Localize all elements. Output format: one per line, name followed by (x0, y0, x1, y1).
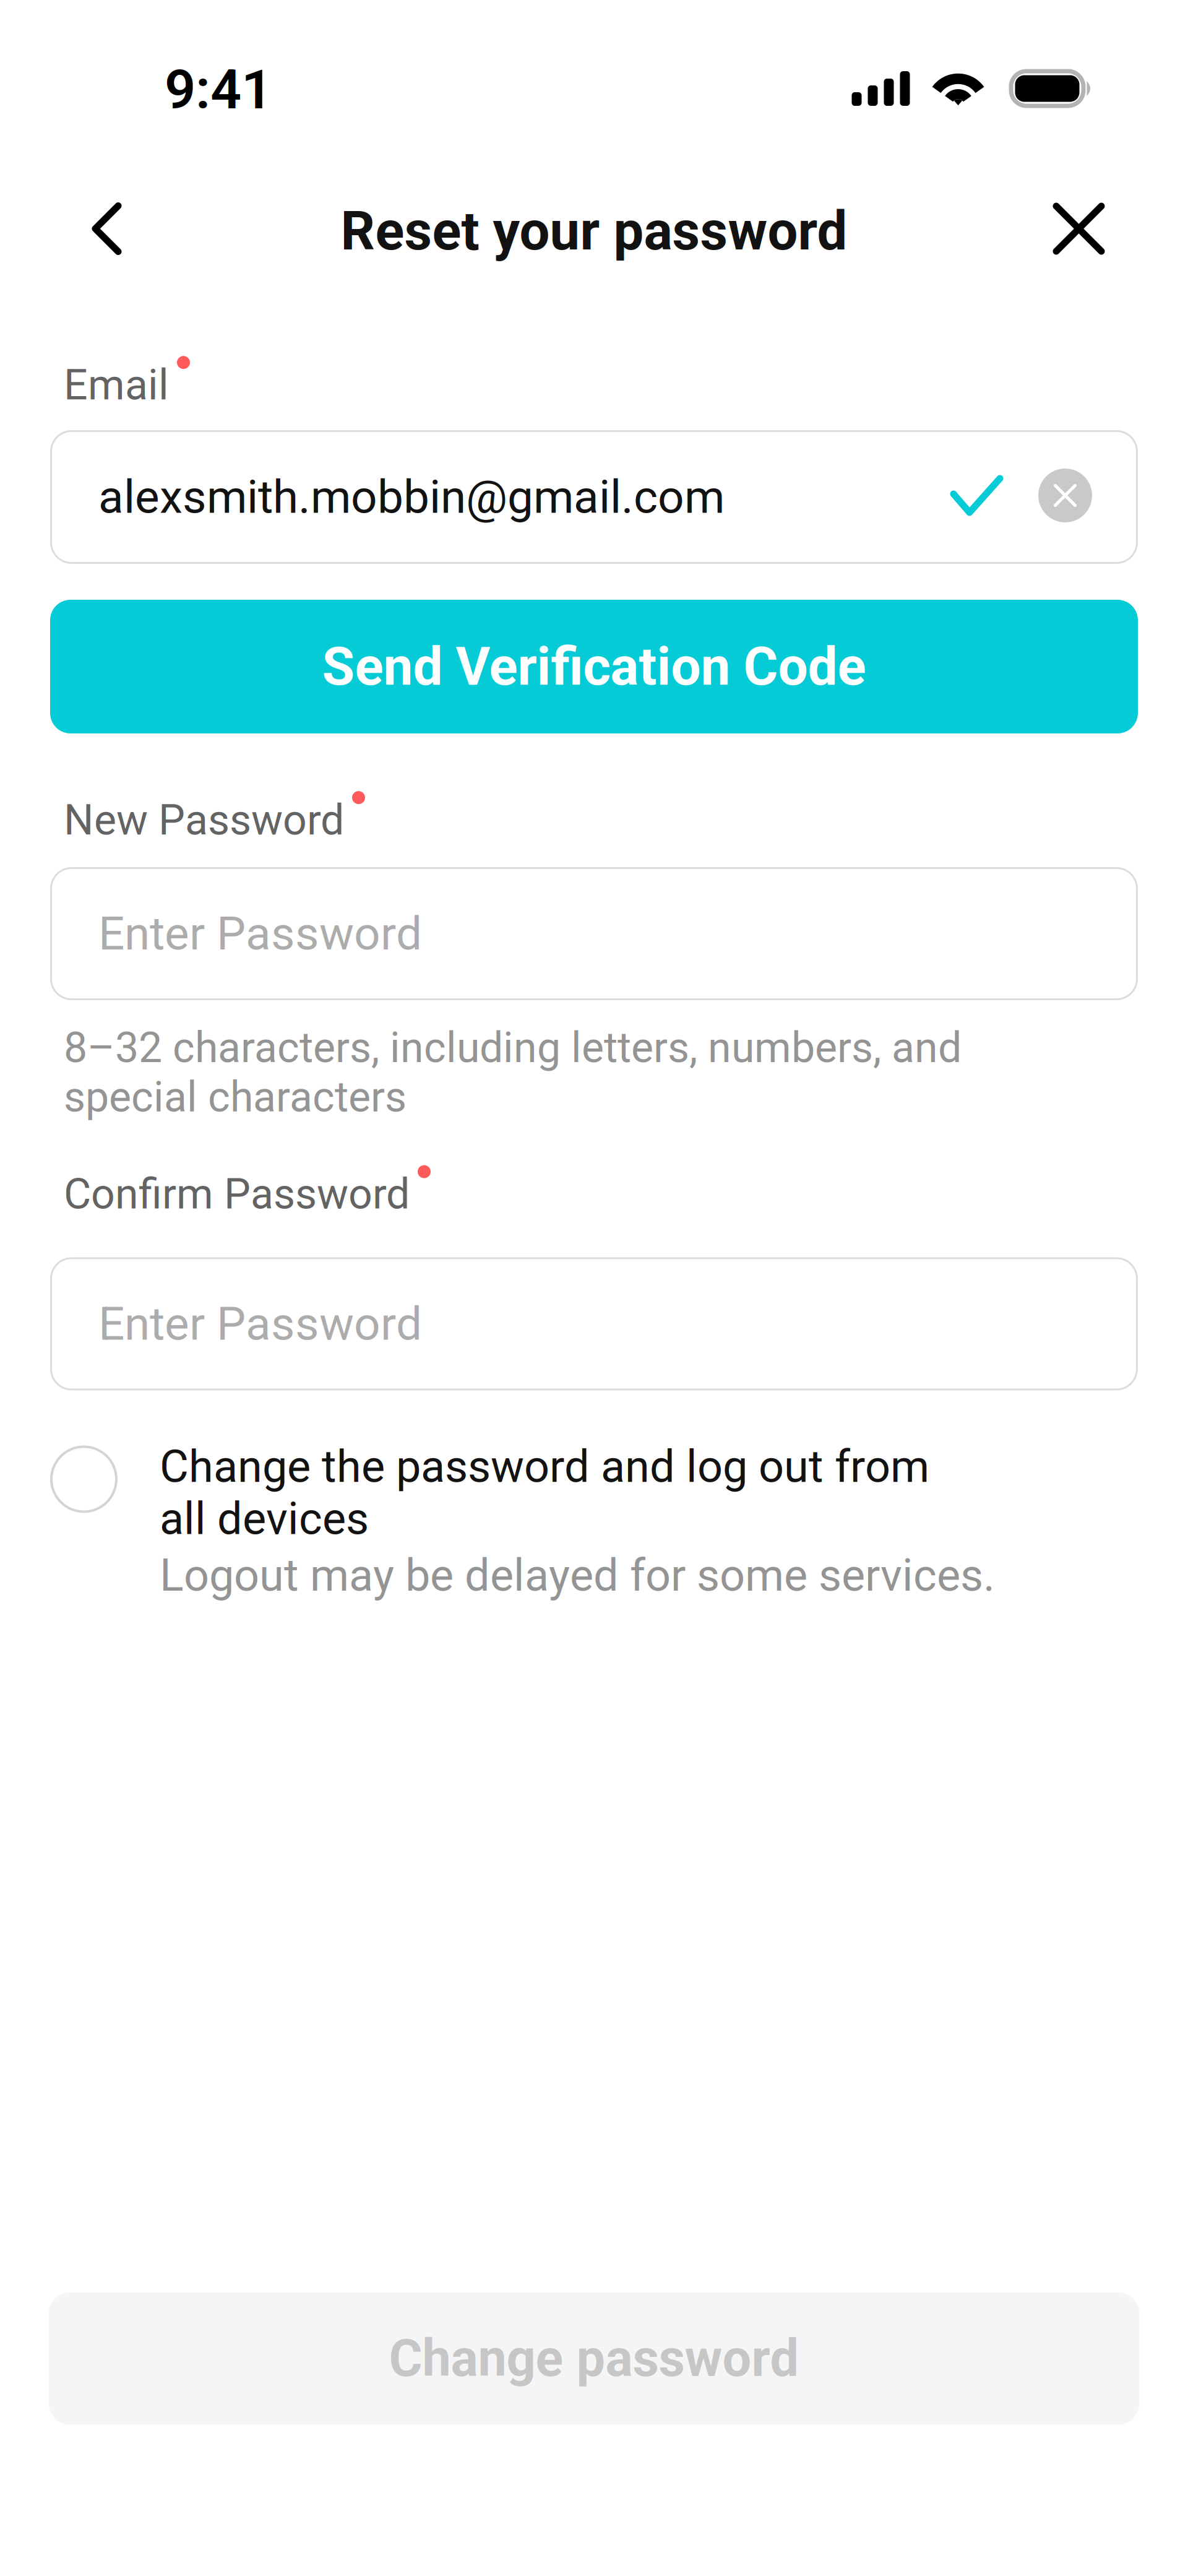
staticText: Logout may be delayed for some services. (160, 1549, 995, 1601)
button[interactable]: Close (1019, 183, 1188, 280)
button[interactable]: Change password (49, 2293, 1139, 2424)
staticText: Enter Password (98, 1297, 422, 1351)
staticText: Enter Password (98, 907, 422, 961)
staticText: Change the password and log out from all… (160, 1441, 929, 1545)
staticText: Send Verification Code (322, 636, 866, 698)
button[interactable]: Send Verification Code (50, 600, 1138, 733)
staticText: Change password (389, 2328, 799, 2388)
staticText: 9:41 (165, 58, 272, 122)
button[interactable]: Change the password and log out from all… (50, 1441, 1138, 1601)
staticText: Email (64, 360, 169, 410)
staticText: Reset your password (341, 200, 847, 263)
staticText: alexsmith.mobbin@gmail.com (98, 470, 725, 524)
staticText: Confirm Password (64, 1169, 410, 1219)
button[interactable]: Clear (1038, 469, 1092, 525)
staticText: New Password (64, 795, 344, 845)
staticText: 8–32 characters, including letters, numb… (64, 1023, 962, 1122)
button[interactable]: Back (0, 182, 155, 280)
